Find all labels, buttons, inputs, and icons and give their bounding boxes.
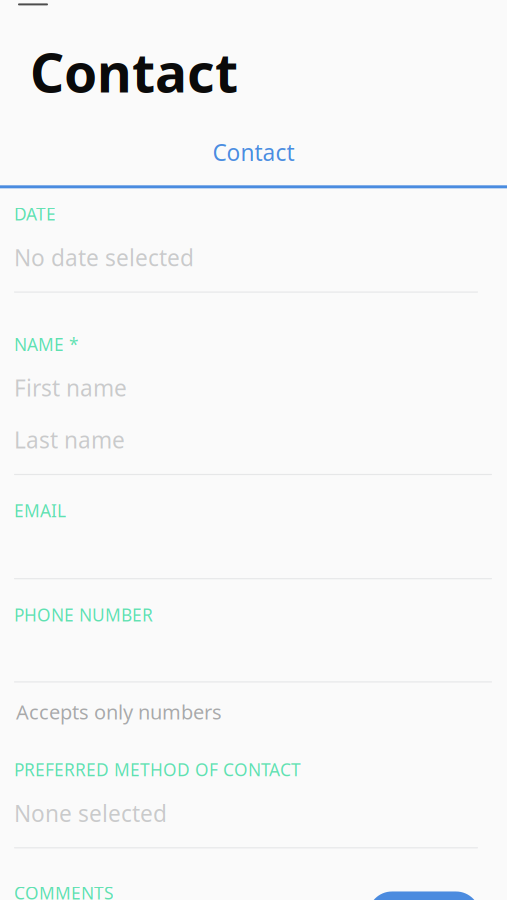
staticText: PREFERRED METHOD OF CONTACT [14,758,301,781]
button[interactable]: No date selected [0,242,507,293]
button[interactable]: None selected [0,798,507,848]
staticText: COMMENTS [14,881,114,900]
staticText: PHONE NUMBER [14,603,153,626]
staticText: Accepts only numbers [16,698,222,725]
staticText: None selected [14,798,167,828]
staticText: No date selected [14,242,194,272]
staticText: Last name [14,425,125,455]
button[interactable]: Last name [0,425,507,475]
button[interactable]: First name [0,373,507,403]
button[interactable]: Submit [368,891,480,900]
staticText: Contact [30,36,238,107]
staticText: NAME * [14,333,79,356]
staticText: DATE [14,202,56,225]
staticText: EMAIL [14,499,66,522]
button[interactable]: Menu [0,0,62,14]
button[interactable]: Contact [0,133,507,171]
staticText: Contact [212,137,294,167]
staticText: First name [14,373,127,403]
